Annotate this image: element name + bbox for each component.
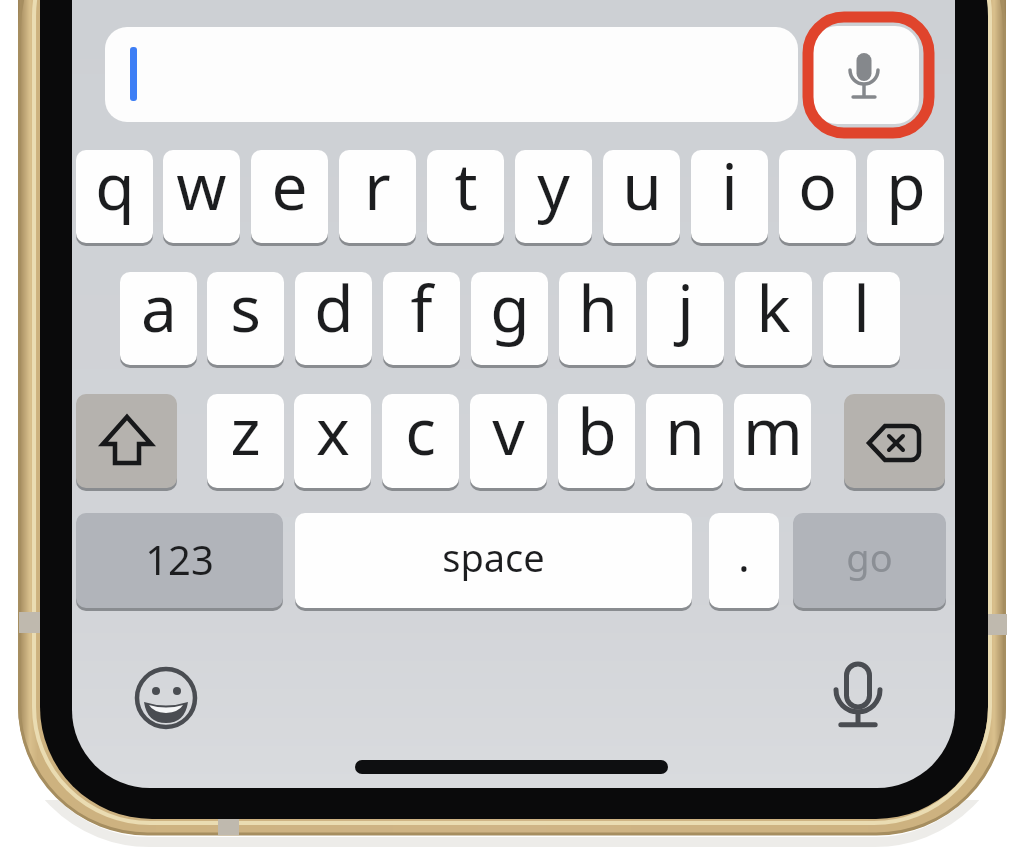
button[interactable] <box>820 658 896 736</box>
staticText: p <box>886 150 926 229</box>
staticText: y <box>537 150 570 229</box>
button[interactable]: x <box>294 394 371 488</box>
staticText: u <box>622 150 662 229</box>
staticText: r <box>364 150 391 229</box>
button[interactable]: o <box>779 150 856 243</box>
button[interactable] <box>105 27 798 122</box>
button[interactable]: j <box>647 272 724 365</box>
button[interactable]: n <box>646 394 723 488</box>
staticText: v <box>492 394 525 474</box>
staticText: x <box>316 394 350 474</box>
staticText: i <box>721 150 738 229</box>
button[interactable]: k <box>735 272 812 365</box>
button[interactable]: b <box>558 394 635 488</box>
button[interactable]: p <box>867 150 944 243</box>
button[interactable]: f <box>383 272 460 365</box>
staticText: space <box>442 531 545 583</box>
staticText: n <box>665 394 705 474</box>
staticText: s <box>230 272 261 351</box>
staticText: l <box>853 272 870 351</box>
button[interactable]: a <box>120 272 197 365</box>
button[interactable] <box>813 26 919 124</box>
staticText: o <box>798 150 837 229</box>
staticText: g <box>490 272 530 351</box>
staticText: q <box>95 150 135 229</box>
staticText: c <box>405 394 436 474</box>
button[interactable]: i <box>691 150 768 243</box>
button[interactable]: u <box>603 150 680 243</box>
staticText: . <box>738 525 750 585</box>
button[interactable]: 123 <box>76 513 283 608</box>
button[interactable]: e <box>251 150 328 243</box>
staticText: j <box>677 272 694 351</box>
staticText: w <box>176 150 227 229</box>
staticText: d <box>314 272 354 351</box>
button[interactable] <box>76 394 177 488</box>
button[interactable]: c <box>382 394 459 488</box>
staticText: a <box>141 272 177 351</box>
button[interactable]: s <box>207 272 284 365</box>
staticText: t <box>454 150 478 229</box>
button[interactable]: v <box>470 394 547 488</box>
button[interactable]: t <box>427 150 504 243</box>
button[interactable]: m <box>734 394 811 488</box>
button[interactable]: go <box>793 513 946 608</box>
staticText: 123 <box>145 532 214 586</box>
staticText: h <box>578 272 618 351</box>
button[interactable]: z <box>207 394 284 488</box>
staticText: b <box>577 394 617 474</box>
button[interactable]: w <box>163 150 240 243</box>
button[interactable]: g <box>471 272 548 365</box>
button[interactable]: l <box>823 272 900 365</box>
staticText: f <box>410 272 433 351</box>
button[interactable]: y <box>515 150 592 243</box>
button[interactable]: r <box>339 150 416 243</box>
staticText: go <box>846 531 893 583</box>
button[interactable]: h <box>559 272 636 365</box>
button[interactable]: q <box>76 150 153 243</box>
button[interactable]: . <box>709 513 779 608</box>
staticText: k <box>756 272 791 351</box>
staticText: e <box>271 150 308 229</box>
staticText: m <box>743 394 803 474</box>
staticText: z <box>230 394 261 474</box>
button[interactable] <box>844 394 945 488</box>
button[interactable]: space <box>295 513 692 608</box>
button[interactable]: d <box>295 272 372 365</box>
button[interactable] <box>130 662 202 734</box>
